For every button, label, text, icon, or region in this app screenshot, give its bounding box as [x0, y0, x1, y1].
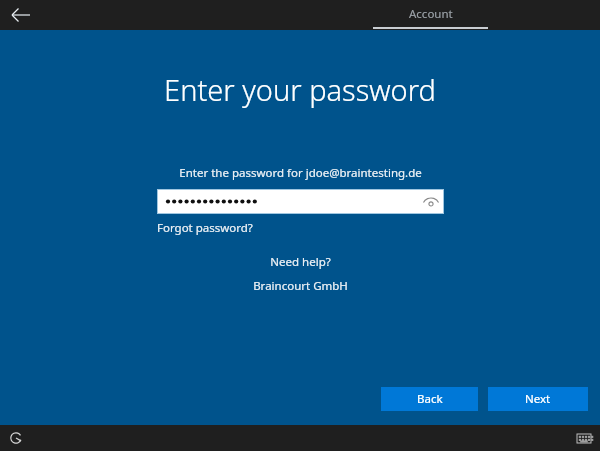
button[interactable]: Need help? — [270, 254, 331, 270]
staticText: Need help? — [270, 254, 331, 270]
staticText: Enter your password — [164, 70, 436, 109]
staticText: Enter the password for jdoe@braintesting… — [179, 165, 422, 181]
staticText: Braincourt GmbH — [253, 278, 348, 294]
button[interactable]: Forgot password? — [157, 219, 253, 237]
staticText: Account — [409, 6, 453, 22]
staticText: Back — [417, 391, 443, 407]
button[interactable]: Ease of Access — [4, 426, 28, 450]
button[interactable]: Back — [381, 387, 478, 411]
button[interactable]: Show password — [418, 190, 444, 213]
staticText: Forgot password? — [157, 220, 253, 236]
button[interactable]: Account — [373, 0, 488, 29]
button[interactable]: Back — [6, 3, 36, 27]
staticText: Next — [525, 391, 551, 407]
button[interactable]: Show password — [157, 189, 444, 214]
button[interactable]: Next — [488, 387, 588, 411]
button[interactable]: Touch keyboard — [572, 426, 596, 450]
